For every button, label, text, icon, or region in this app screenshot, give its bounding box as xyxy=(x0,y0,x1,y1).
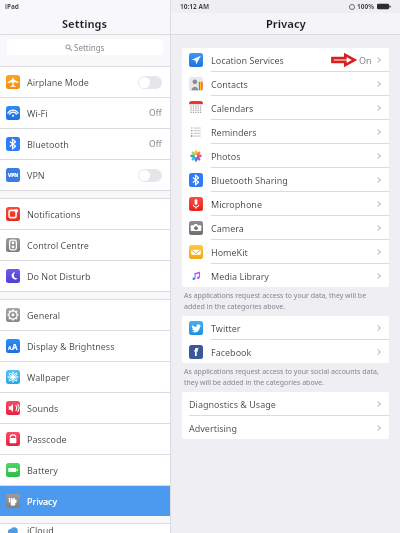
button[interactable]: iCloud xyxy=(0,524,170,533)
button[interactable]: Diagnostics & Usage xyxy=(182,392,389,415)
staticText: iPad xyxy=(5,2,19,11)
button[interactable]: General xyxy=(0,300,170,330)
staticText: General xyxy=(27,309,61,321)
button[interactable]: Twitter xyxy=(182,316,389,339)
staticText: Microphone xyxy=(211,198,376,210)
button[interactable]: Control Centre xyxy=(0,230,170,260)
staticText: Privacy xyxy=(266,16,306,31)
staticText: f xyxy=(194,345,198,359)
button[interactable]: Location Services xyxy=(182,48,389,71)
button[interactable]: Reminders xyxy=(182,120,389,143)
staticText: As applications request access to your d… xyxy=(184,291,367,311)
staticText: On xyxy=(359,54,372,66)
button[interactable]: Microphone xyxy=(182,192,389,215)
button[interactable]: Wi-Fi xyxy=(0,98,170,128)
button[interactable]: A xyxy=(0,331,170,361)
staticText: Settings xyxy=(74,42,105,53)
button[interactable]: Settings xyxy=(7,39,163,55)
staticText: Wi-Fi xyxy=(27,107,48,119)
staticText: Contacts xyxy=(211,78,376,90)
staticText: Location Services xyxy=(211,54,332,66)
button[interactable]: Calendars xyxy=(182,96,389,119)
staticText: 10:12 AM xyxy=(180,2,210,11)
staticText: As applications request access to your s… xyxy=(184,367,379,387)
staticText: Sounds xyxy=(27,402,59,414)
staticText: Display & Brightness xyxy=(27,340,115,352)
staticText: iCloud xyxy=(27,524,54,533)
staticText: A xyxy=(8,345,12,352)
button[interactable]: VPN xyxy=(0,160,170,190)
staticText: A xyxy=(12,341,18,352)
staticText: Wallpaper xyxy=(27,371,70,383)
button[interactable]: Airplane Mode xyxy=(0,67,170,97)
button[interactable]: Camera xyxy=(182,216,389,239)
staticText: Airplane Mode xyxy=(27,76,89,88)
staticText: Privacy xyxy=(27,495,58,507)
button[interactable]: HomeKit xyxy=(182,240,389,263)
button[interactable]: Media Library xyxy=(182,264,389,287)
staticText: Do Not Disturb xyxy=(27,270,91,282)
staticText: Off xyxy=(149,107,162,119)
button[interactable]: Wallpaper xyxy=(0,362,170,392)
button[interactable]: Battery xyxy=(0,455,170,485)
staticText: Photos xyxy=(211,150,376,162)
button[interactable]: Bluetooth Sharing xyxy=(182,168,389,191)
button[interactable]: Do Not Disturb xyxy=(0,261,170,291)
staticText: Calendars xyxy=(211,102,376,114)
staticText: Diagnostics & Usage xyxy=(189,398,376,410)
button[interactable]: Bluetooth xyxy=(0,129,170,159)
staticText: Camera xyxy=(211,222,376,234)
staticText: Settings xyxy=(62,16,108,31)
button[interactable]: Contacts xyxy=(182,72,389,95)
button[interactable]: Sounds xyxy=(0,393,170,423)
staticText: Facebook xyxy=(211,346,376,358)
staticText: 100% xyxy=(357,2,375,11)
staticText: Control Centre xyxy=(27,239,89,251)
button[interactable]: Passcode xyxy=(0,424,170,454)
staticText: Twitter xyxy=(211,322,376,334)
staticText: Off xyxy=(149,138,162,150)
staticText: Bluetooth xyxy=(27,138,69,150)
staticText: Passcode xyxy=(27,433,67,445)
staticText: VPN xyxy=(27,169,45,181)
staticText: Media Library xyxy=(211,270,376,282)
button[interactable]: Notifications xyxy=(0,199,170,229)
staticText: Advertising xyxy=(189,422,376,434)
staticText: VPN xyxy=(8,172,19,179)
staticText: Reminders xyxy=(211,126,376,138)
button[interactable]: Photos xyxy=(182,144,389,167)
staticText: Bluetooth Sharing xyxy=(211,174,376,186)
staticText: Battery xyxy=(27,464,58,476)
staticText: HomeKit xyxy=(211,246,376,258)
button[interactable]: Advertising xyxy=(182,416,389,439)
staticText: Notifications xyxy=(27,208,81,220)
other: Pointer xyxy=(332,54,355,66)
button[interactable]: f xyxy=(182,340,389,363)
button[interactable]: Privacy xyxy=(0,486,170,516)
